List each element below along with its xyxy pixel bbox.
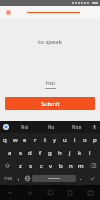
button[interactable]: Noi [12,121,38,133]
staticText: w [13,136,18,144]
staticText: i [74,136,76,144]
button[interactable]: s [15,146,25,159]
button[interactable]: v [46,159,56,172]
button[interactable]: k [75,146,85,159]
staticText: n [69,162,73,170]
button[interactable]: Backspace [86,159,100,172]
button[interactable]: Space [32,175,76,182]
button[interactable]: Comma [15,172,23,185]
staticText: . [80,175,82,182]
button[interactable]: t [40,133,50,146]
button[interactable]: p [90,133,100,146]
button[interactable]: Keyboard [80,185,100,200]
button[interactable]: r [30,133,40,146]
button[interactable]: Recents [60,185,80,200]
staticText: y [53,136,57,144]
button[interactable]: u [60,133,70,146]
button[interactable]: Submit [5,97,95,110]
button[interactable]: z [15,159,26,172]
staticText: t [44,136,47,144]
other: Google [3,124,9,130]
button[interactable]: n [66,159,76,172]
staticText: l [89,149,91,157]
staticText: d [28,149,32,157]
staticText: x [29,162,33,170]
staticText: ?123 [4,176,13,181]
staticText: , [18,175,20,182]
button[interactable]: w [10,133,20,146]
staticText: to speak [38,38,62,46]
staticText: hoi [46,79,55,87]
staticText: s [19,149,22,157]
staticText: u [63,136,67,144]
staticText: j [69,149,71,157]
staticText: q [3,136,7,144]
staticText: r [34,136,37,144]
button[interactable]: y [50,133,60,146]
staticText: o [83,136,87,144]
staticText: e [23,136,27,144]
button[interactable]: c [36,159,46,172]
staticText: g [48,149,52,157]
staticText: h [58,149,62,157]
button[interactable]: Home [40,185,60,200]
button[interactable]: Menu [0,185,20,200]
button[interactable]: No [38,121,64,133]
button[interactable]: q [0,133,10,146]
button[interactable]: h [55,146,65,159]
button[interactable]: o [80,133,90,146]
button[interactable]: l [85,146,95,159]
staticText: b [59,162,63,170]
staticText: v [49,162,53,170]
button[interactable]: Period [76,172,85,185]
button[interactable]: b [56,159,66,172]
staticText: Nice [72,124,82,130]
button[interactable]: a [5,146,15,159]
staticText: Submit [41,100,60,107]
staticText: Noi [21,124,29,130]
button[interactable]: Change language [23,172,32,185]
staticText: f [39,149,42,157]
staticText: k [78,149,82,157]
button[interactable]: e [20,133,30,146]
button[interactable]: Symbols [1,172,15,185]
staticText: m [78,162,84,170]
button[interactable]: Shift [0,159,15,172]
button[interactable]: Back [20,185,40,200]
staticText: No [48,124,55,130]
button[interactable]: m [76,159,86,172]
button[interactable]: Nice [64,121,90,133]
button[interactable]: App icon [6,10,11,15]
staticText: a [8,149,12,157]
button[interactable]: j [65,146,75,159]
button[interactable]: i [70,133,80,146]
button[interactable]: f [35,146,45,159]
other: Voice input [92,125,97,130]
button[interactable]: g [45,146,55,159]
staticText: p [93,136,97,144]
button[interactable]: x [26,159,36,172]
button[interactable]: Enter [85,172,99,185]
button[interactable]: d [25,146,35,159]
staticText: c [40,162,43,170]
staticText: z [19,162,22,170]
